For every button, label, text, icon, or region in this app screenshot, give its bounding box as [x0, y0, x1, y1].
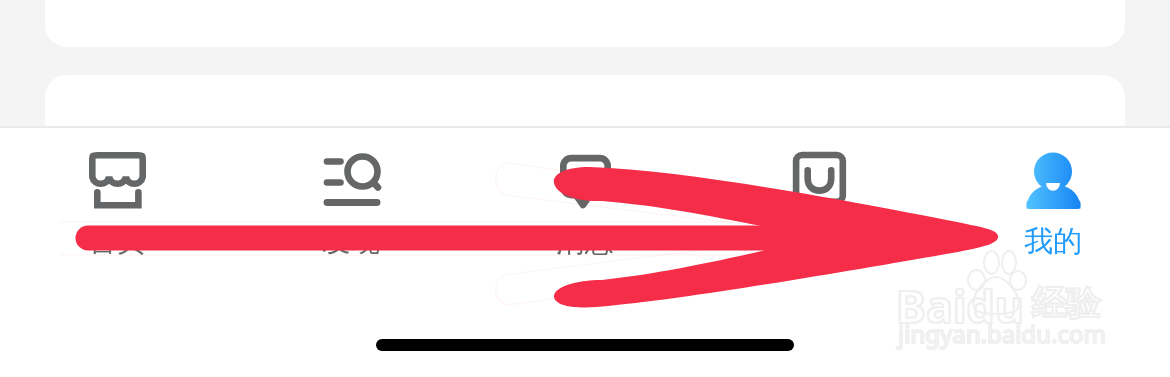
staticText: 首页 — [88, 223, 146, 260]
button[interactable]: Mine — [936, 128, 1170, 260]
staticText: 我的 — [1024, 223, 1082, 260]
staticText: 消息 — [556, 223, 614, 260]
button[interactable]: Messages — [468, 128, 702, 260]
staticText: jingyan.baidu.com — [898, 317, 1106, 350]
staticText: 发现 — [322, 223, 380, 260]
staticText: Baidu — [896, 275, 1025, 336]
button[interactable]: Cart — [702, 128, 936, 260]
staticText: 经验 — [1032, 282, 1100, 325]
button[interactable] — [45, 75, 1125, 195]
button[interactable]: Discover — [234, 128, 468, 260]
button[interactable]: Home — [0, 128, 234, 260]
